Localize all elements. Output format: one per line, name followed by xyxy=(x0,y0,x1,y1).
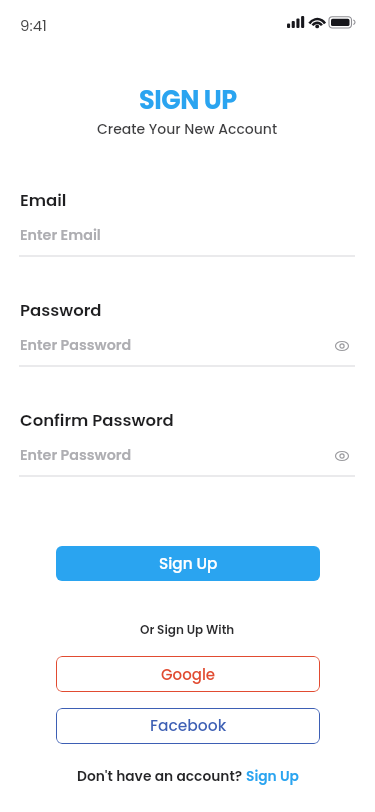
button[interactable] xyxy=(335,339,349,353)
staticText: Google xyxy=(161,664,216,685)
staticText: Confirm Password xyxy=(20,409,174,432)
button[interactable]: Sign Up xyxy=(246,767,299,786)
button[interactable] xyxy=(335,449,349,463)
staticText: SIGN UP xyxy=(139,82,237,118)
button[interactable]: Sign Up xyxy=(56,546,320,581)
staticText: Enter Password xyxy=(20,335,132,355)
button[interactable]: Enter Email xyxy=(19,219,319,255)
staticText: Password xyxy=(20,299,102,322)
staticText: 9:41 xyxy=(20,15,47,36)
button[interactable]: Enter Password xyxy=(19,329,319,365)
button[interactable]: Enter Password xyxy=(19,439,319,475)
staticText: Enter Email xyxy=(20,225,101,245)
staticText: Sign Up xyxy=(159,553,218,574)
staticText: Don't have an account? xyxy=(77,767,246,786)
button[interactable]: Facebook xyxy=(56,708,320,744)
button[interactable]: Google xyxy=(56,656,320,692)
staticText: Facebook xyxy=(150,715,227,737)
staticText: Create Your New Account xyxy=(97,119,278,139)
staticText: Or Sign Up With xyxy=(140,621,235,638)
staticText: Email xyxy=(20,189,67,212)
staticText: Enter Password xyxy=(20,445,132,465)
